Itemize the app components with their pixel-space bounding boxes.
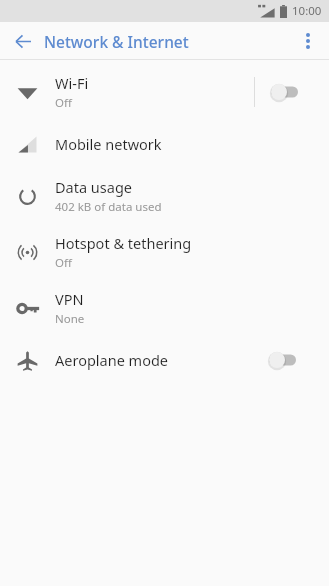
staticText: 402 kB of data used <box>55 199 162 215</box>
staticText: Wi-Fi <box>55 73 89 93</box>
staticText: None <box>55 311 85 327</box>
button[interactable]: Wi-Fi toggle <box>269 77 315 107</box>
button[interactable]: Hotspot & tethering <box>0 224 329 280</box>
staticText: Hotspot & tethering <box>55 233 192 253</box>
button[interactable]: More options <box>292 25 324 57</box>
staticText: Mobile network <box>55 134 162 154</box>
button[interactable]: Data usage <box>0 168 329 224</box>
button[interactable]: Aeroplane mode toggle <box>267 345 313 375</box>
staticText: VPN <box>55 289 84 309</box>
staticText: Data usage <box>55 177 132 197</box>
button[interactable]: Wi-Fi <box>0 64 329 120</box>
button[interactable]: VPN <box>0 280 329 336</box>
staticText: Aeroplane mode <box>55 350 169 370</box>
staticText: 10:00 <box>292 3 322 19</box>
staticText: Off <box>55 95 72 111</box>
button[interactable]: Mobile network <box>0 120 329 168</box>
staticText: Network & Internet <box>44 31 189 52</box>
button[interactable]: Back <box>6 24 40 58</box>
button[interactable]: Aeroplane mode <box>0 336 329 384</box>
staticText: Off <box>55 255 72 271</box>
